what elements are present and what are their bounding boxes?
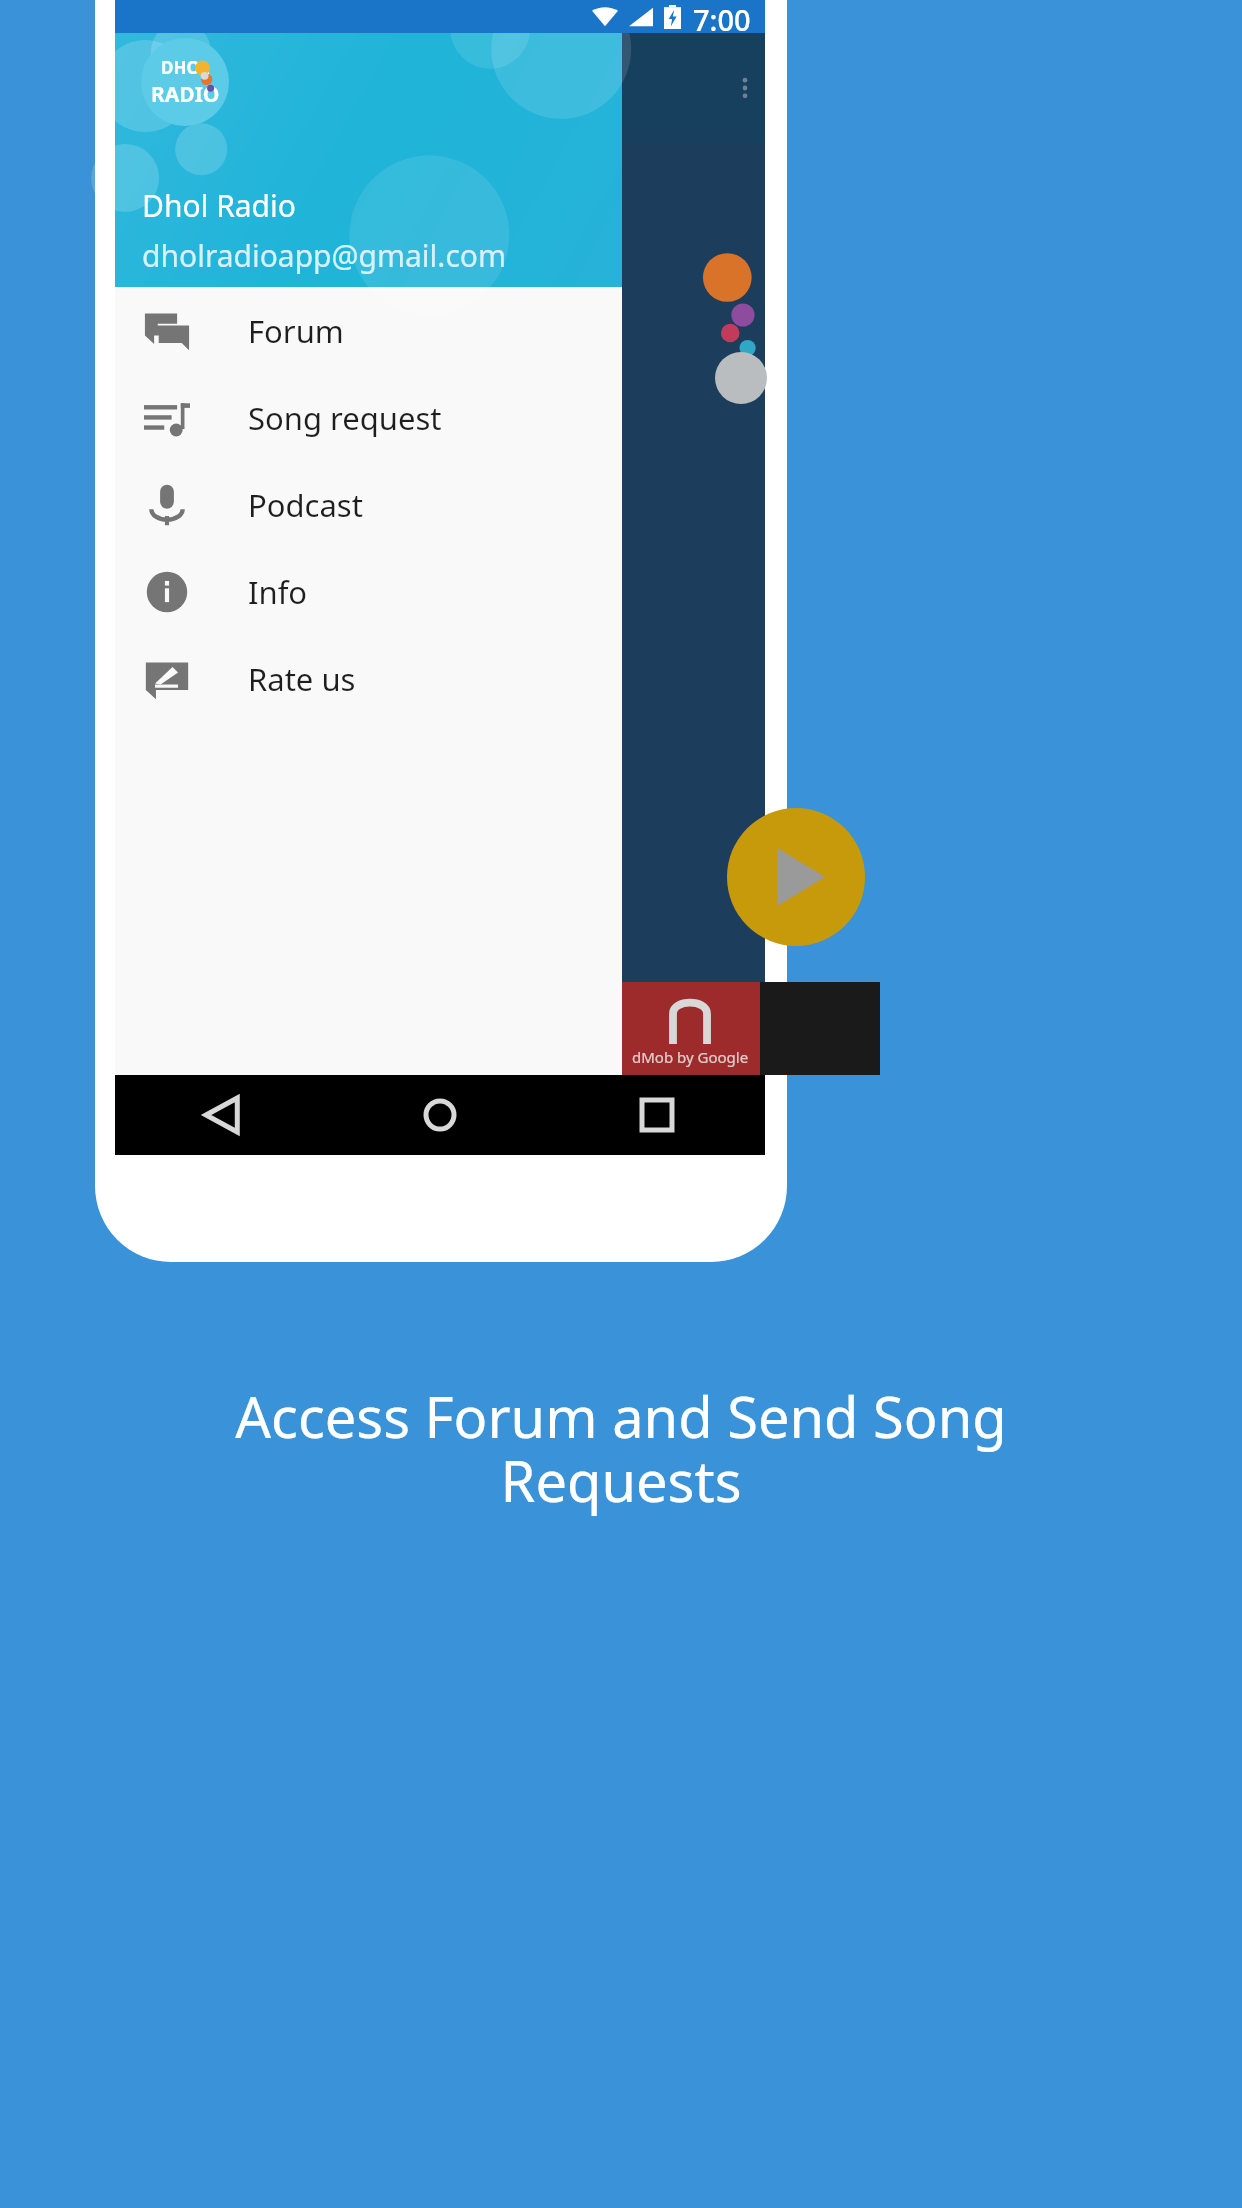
button[interactable]: Play (727, 808, 865, 946)
button[interactable]: Rate us (115, 635, 622, 722)
staticText: Podcast (248, 484, 363, 526)
button[interactable]: Forum (115, 287, 622, 374)
button[interactable]: Home (331, 1075, 548, 1155)
staticText: dholradioapp@gmail.com (142, 235, 506, 276)
staticText: Access Forum and Send Song Requests (235, 1378, 1007, 1519)
staticText: 7:00 (693, 0, 751, 33)
button[interactable]: Back (115, 1075, 331, 1155)
staticText: Song request (248, 397, 442, 439)
button[interactable]: Dhol Radio logo (141, 38, 229, 126)
button[interactable]: Recent apps (548, 1075, 765, 1155)
button[interactable]: More options (715, 58, 775, 118)
button[interactable]: Info (115, 548, 622, 635)
staticText: Dhol Radio (142, 185, 296, 226)
staticText: RADIO (151, 80, 220, 109)
staticText: dMob by Google (632, 1047, 749, 1067)
staticText: DHOL (161, 56, 210, 79)
button[interactable]: Song request (115, 374, 622, 461)
staticText: Info (248, 571, 308, 613)
staticText: Rate us (248, 658, 356, 700)
staticText: Forum (248, 310, 344, 352)
button[interactable]: Podcast (115, 461, 622, 548)
